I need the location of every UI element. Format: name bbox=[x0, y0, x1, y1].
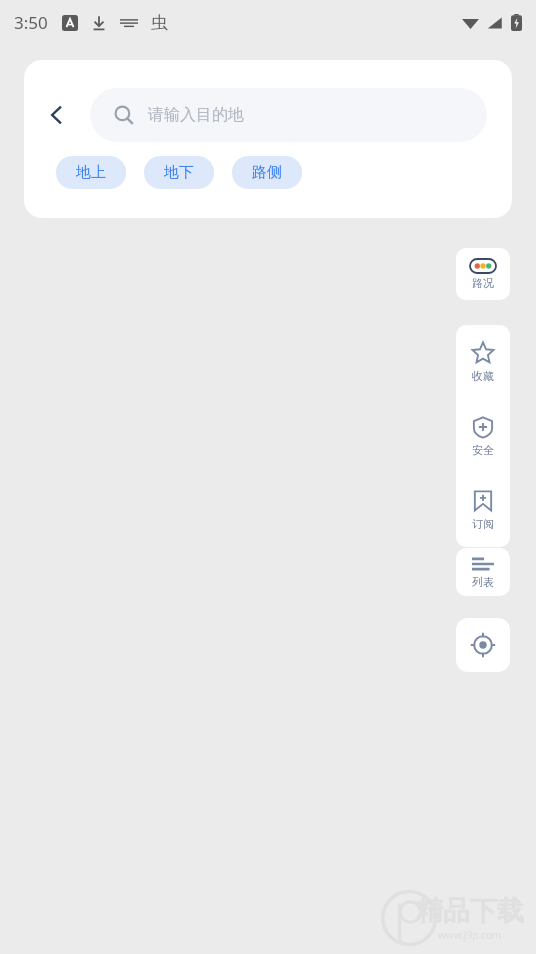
button[interactable]: 请输入目的地 bbox=[90, 88, 487, 142]
staticText: 地下 bbox=[164, 163, 194, 182]
button[interactable]: My location bbox=[456, 618, 510, 672]
button[interactable]: 地下 bbox=[144, 156, 214, 189]
staticText: 路侧 bbox=[252, 163, 282, 182]
button[interactable]: 订阅 bbox=[456, 473, 510, 547]
staticText: 安全 bbox=[472, 443, 494, 457]
staticText: 3:50 bbox=[14, 11, 48, 34]
button[interactable]: 路况 bbox=[456, 248, 510, 300]
button[interactable]: 路侧 bbox=[232, 156, 302, 189]
button[interactable]: 列表 bbox=[456, 548, 510, 596]
button[interactable]: 收藏 bbox=[456, 325, 510, 399]
staticText: 地上 bbox=[76, 163, 106, 182]
button[interactable]: 安全 bbox=[456, 399, 510, 473]
staticText: 请输入目的地 bbox=[148, 105, 244, 125]
staticText: 列表 bbox=[472, 575, 494, 589]
button[interactable]: 地上 bbox=[56, 156, 126, 189]
staticText: www.j9p.com bbox=[438, 928, 502, 942]
staticText: 虫 bbox=[151, 12, 168, 33]
staticText: 精品下载 bbox=[416, 894, 524, 928]
staticText: 收藏 bbox=[472, 369, 494, 383]
staticText: 订阅 bbox=[472, 517, 494, 531]
button[interactable]: Back bbox=[24, 88, 90, 142]
staticText: 路况 bbox=[472, 276, 494, 290]
